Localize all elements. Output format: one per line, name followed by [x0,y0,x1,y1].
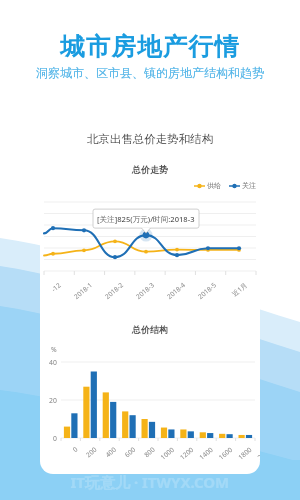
staticText: 城市房地产行情 [0,31,300,62]
staticText: 总价结构 [40,324,260,335]
staticText: 供给 [207,181,221,190]
button[interactable]: 北京出售总价走势和结构 [40,114,260,474]
button[interactable]: 供给 [194,181,221,190]
staticText: 北京出售总价走势和结构 [40,132,260,146]
button[interactable]: 关注 [229,181,256,190]
staticText: 总价走势 [40,164,260,175]
staticText: 洞察城市、区市县、镇的房地产结构和趋势 [0,65,300,80]
staticText: 关注 [242,181,256,190]
